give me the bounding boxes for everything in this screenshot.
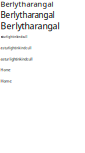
staticText: asturlightinkindcull bbox=[0, 35, 27, 39]
staticText: asturlightinkindcull bbox=[0, 56, 32, 62]
staticText: Berlytharangal bbox=[0, 0, 53, 9]
staticText: Home bbox=[0, 68, 10, 72]
staticText: Berlytharangal bbox=[0, 10, 54, 20]
staticText: asturlightinkindcull bbox=[0, 46, 31, 50]
staticText: Berlytharangal bbox=[0, 20, 59, 32]
staticText: Home bbox=[0, 78, 11, 84]
